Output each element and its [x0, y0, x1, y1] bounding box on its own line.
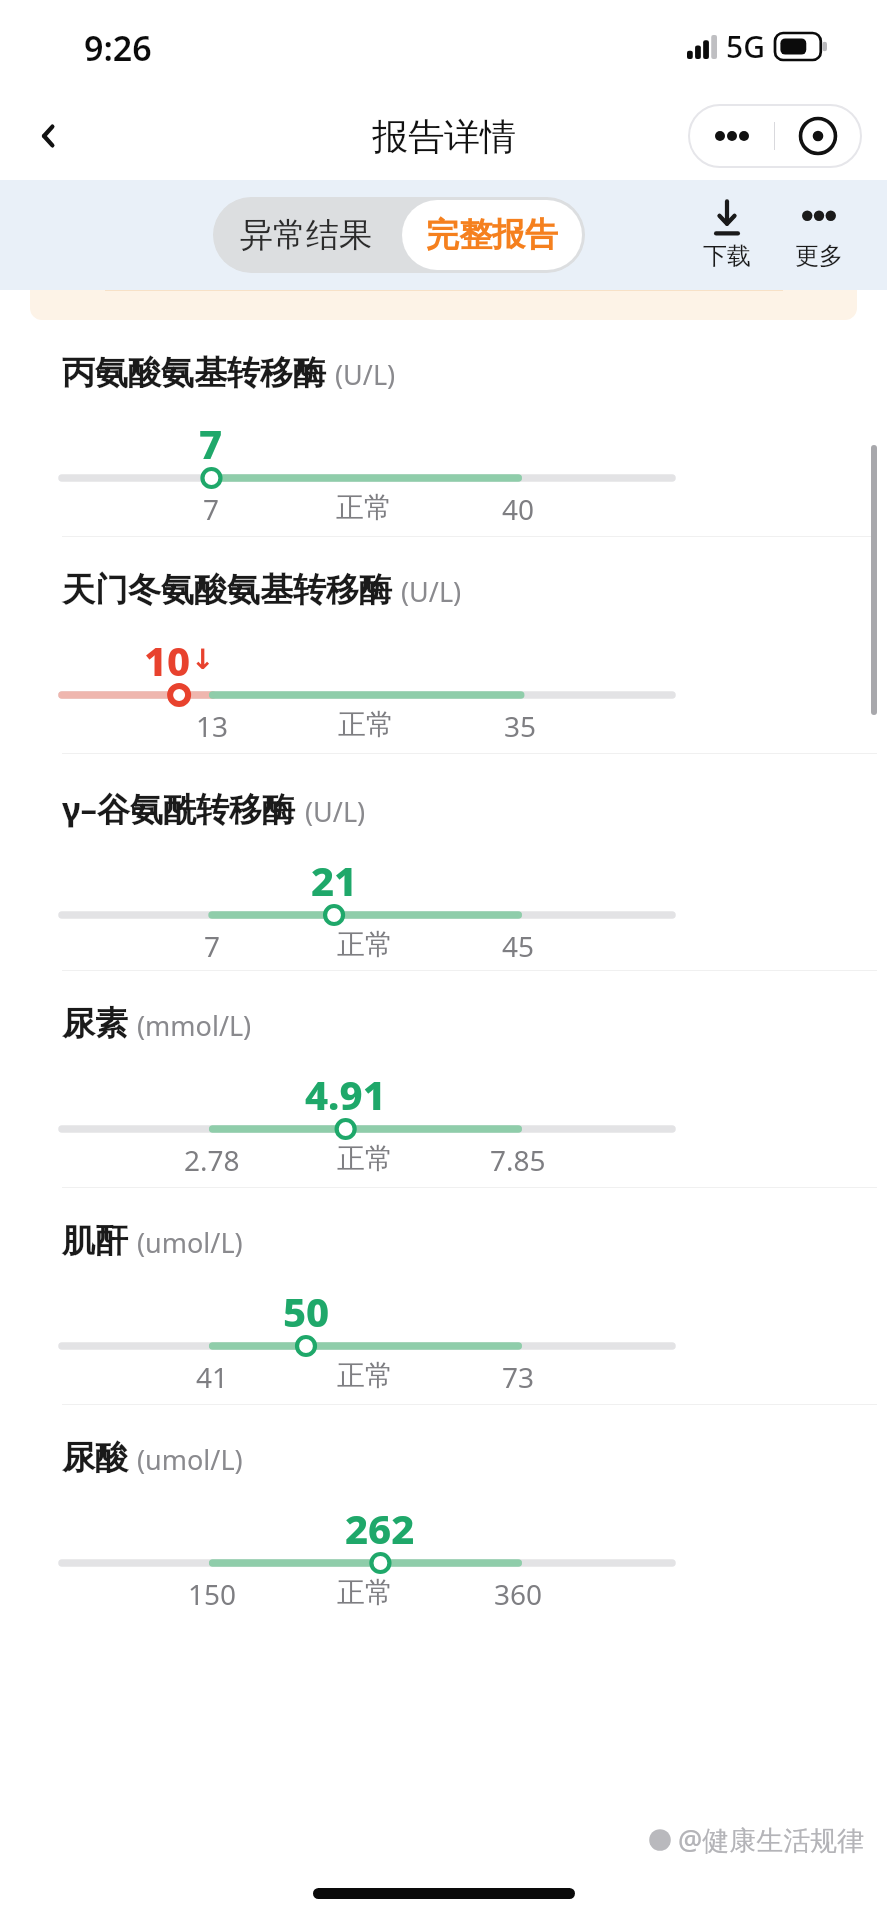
staticText: 21: [311, 853, 358, 905]
staticText: 35: [504, 707, 537, 745]
staticText: 完整报告: [426, 214, 558, 256]
button[interactable]: 下载: [681, 199, 773, 271]
staticText: 正常: [336, 490, 392, 525]
staticText: 正常: [338, 707, 394, 742]
staticText: 正常: [337, 1358, 393, 1393]
button[interactable]: Target: [775, 105, 861, 167]
staticText: 下载: [703, 241, 751, 271]
staticText: 7: [203, 490, 220, 528]
staticText: 360: [494, 1575, 543, 1613]
staticText: (mmol/L): [137, 1007, 252, 1044]
staticText: 更多: [795, 241, 843, 271]
staticText: 异常结果: [240, 214, 372, 256]
button[interactable]: Back: [18, 104, 82, 168]
staticText: 2.78: [184, 1141, 240, 1179]
staticText: @健康生活规律: [678, 1821, 865, 1858]
staticText: 肌酐: [62, 1220, 128, 1262]
staticText: 262: [345, 1501, 415, 1553]
staticText: 40: [502, 490, 535, 528]
staticText: 4.91: [305, 1067, 386, 1119]
staticText: 10: [144, 633, 191, 685]
staticText: 45: [502, 927, 535, 965]
staticText: 尿素: [62, 1003, 128, 1045]
staticText: 丙氨酸氨基转移酶: [62, 352, 326, 394]
staticText: 41: [196, 1358, 229, 1396]
staticText: 报告详情: [372, 114, 516, 159]
staticText: 150: [188, 1575, 237, 1613]
staticText: 7: [199, 416, 223, 468]
staticText: 天门冬氨酸氨基转移酶: [62, 569, 392, 611]
staticText: 7.85: [490, 1141, 546, 1179]
staticText: (U/L): [401, 573, 462, 610]
button[interactable]: 完整报告: [402, 200, 582, 270]
staticText: 正常: [337, 1141, 393, 1176]
button[interactable]: 更多: [773, 199, 865, 271]
staticText: (U/L): [305, 793, 366, 830]
staticText: (umol/L): [137, 1441, 243, 1478]
staticText: 7: [204, 927, 221, 965]
staticText: 尿酸: [62, 1437, 128, 1479]
staticText: 73: [502, 1358, 535, 1396]
staticText: (U/L): [335, 356, 396, 393]
staticText: 正常: [337, 927, 393, 962]
staticText: 13: [196, 707, 229, 745]
staticText: γ–谷氨酰转移酶: [62, 786, 296, 831]
staticText: (umol/L): [137, 1224, 243, 1261]
button[interactable]: 异常结果: [213, 197, 399, 273]
staticText: 5G: [726, 26, 765, 67]
staticText: 50: [283, 1284, 330, 1336]
staticText: 9:26: [84, 25, 152, 71]
staticText: ↓: [191, 643, 215, 676]
staticText: 正常: [337, 1575, 393, 1610]
button[interactable]: More options: [689, 105, 774, 167]
